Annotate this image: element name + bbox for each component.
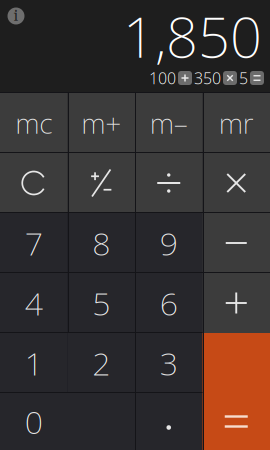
button[interactable]: Minus xyxy=(202,213,270,273)
staticText: 6 xyxy=(160,282,178,324)
button[interactable]: mc xyxy=(0,93,67,153)
button[interactable]: 8 xyxy=(67,213,135,273)
staticText: 1,850 xyxy=(123,0,262,73)
staticText: 350 xyxy=(194,67,221,89)
staticText: m– xyxy=(150,104,188,142)
staticText: 3 xyxy=(160,342,178,384)
staticText: 5 xyxy=(92,282,110,324)
staticText: 9 xyxy=(160,222,178,264)
staticText: 7 xyxy=(25,222,43,264)
button[interactable]: Plus minus xyxy=(67,153,135,213)
button[interactable]: Clear xyxy=(0,153,67,213)
button[interactable]: 5 xyxy=(67,273,135,333)
button[interactable]: Multiply xyxy=(202,153,270,213)
button[interactable]: 0 xyxy=(0,393,135,450)
staticText: mr xyxy=(219,104,254,142)
staticText: 1 xyxy=(25,342,43,384)
button[interactable]: 9 xyxy=(135,213,202,273)
staticText: 8 xyxy=(92,222,110,264)
staticText: mc xyxy=(15,104,52,142)
button[interactable]: 6 xyxy=(135,273,202,333)
button[interactable]: 2 xyxy=(67,333,135,393)
staticText: 4 xyxy=(25,282,43,324)
button[interactable]: Decimal point xyxy=(135,393,202,450)
button[interactable]: 7 xyxy=(0,213,67,273)
staticText: 0 xyxy=(25,400,43,443)
button[interactable]: 4 xyxy=(0,273,67,333)
button[interactable]: 1 xyxy=(0,333,67,393)
button[interactable]: m plus xyxy=(67,93,135,153)
button[interactable]: Divide xyxy=(135,153,202,213)
button[interactable]: Plus xyxy=(202,273,270,333)
staticText: i xyxy=(13,6,18,26)
staticText: 100 xyxy=(149,67,176,89)
button[interactable]: mr xyxy=(202,93,270,153)
button[interactable]: 3 xyxy=(135,333,202,393)
staticText: m+ xyxy=(81,104,121,142)
button[interactable]: Info xyxy=(7,7,24,24)
staticText: 2 xyxy=(92,342,110,384)
staticText: 5 xyxy=(239,67,248,89)
button[interactable]: m minus xyxy=(135,93,202,153)
button[interactable]: Equals xyxy=(202,333,270,450)
